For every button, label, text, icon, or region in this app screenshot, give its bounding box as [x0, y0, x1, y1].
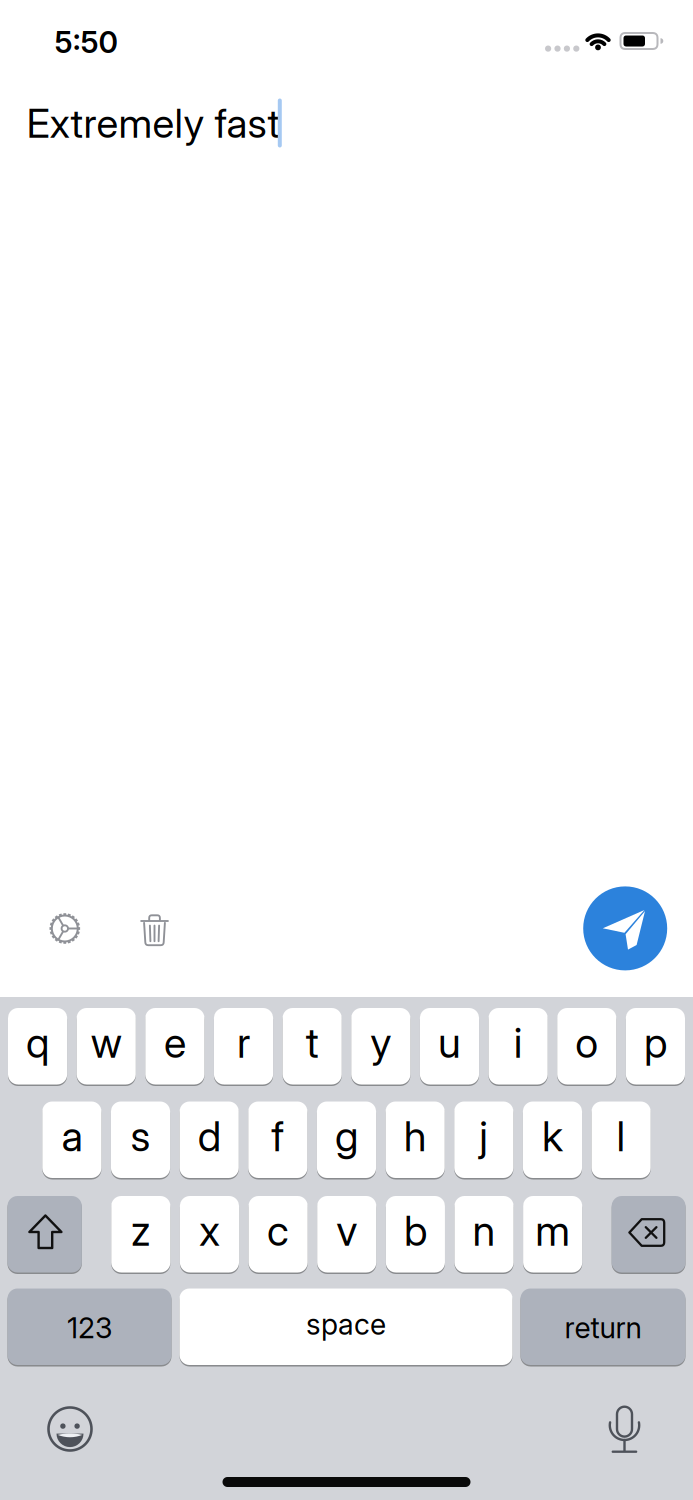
button[interactable] [44, 1403, 96, 1455]
staticText: p [644, 1018, 667, 1068]
staticText: i [514, 1018, 523, 1068]
staticText: h [404, 1111, 427, 1161]
button[interactable]: e [145, 1008, 204, 1084]
button[interactable]: i [488, 1008, 548, 1084]
button[interactable]: v [317, 1196, 376, 1272]
staticText: l [617, 1111, 626, 1161]
button[interactable] [130, 906, 178, 954]
staticText: e [164, 1018, 186, 1068]
button[interactable] [41, 904, 89, 952]
button[interactable]: k [523, 1101, 582, 1178]
button[interactable]: r [214, 1008, 273, 1084]
staticText: t [306, 1018, 319, 1068]
button[interactable]: z [111, 1196, 170, 1272]
staticText: f [271, 1111, 284, 1161]
staticText: 5:50 [54, 24, 117, 60]
staticText: y [370, 1018, 391, 1068]
button[interactable]: y [351, 1008, 410, 1084]
button[interactable]: o [557, 1008, 616, 1084]
staticText: s [130, 1111, 150, 1161]
button[interactable]: l [591, 1101, 651, 1178]
button[interactable]: u [420, 1008, 479, 1084]
button[interactable]: return [520, 1288, 685, 1365]
button[interactable]: j [454, 1101, 513, 1178]
button[interactable]: f [248, 1101, 307, 1178]
staticText: d [198, 1111, 221, 1161]
staticText: k [542, 1111, 563, 1161]
button[interactable]: c [248, 1196, 308, 1272]
staticText: n [472, 1206, 495, 1256]
staticText: w [91, 1018, 122, 1068]
button[interactable] [612, 1196, 685, 1272]
button[interactable]: 123 [7, 1288, 171, 1365]
staticText: o [575, 1018, 598, 1068]
staticText: b [404, 1206, 427, 1256]
button[interactable]: m [523, 1196, 582, 1272]
staticText: m [535, 1206, 570, 1256]
button[interactable] [583, 886, 667, 970]
button[interactable]: b [386, 1196, 445, 1272]
button[interactable]: n [454, 1196, 514, 1272]
staticText: r [237, 1018, 250, 1068]
button[interactable]: a [42, 1101, 101, 1178]
staticText: g [335, 1111, 358, 1161]
staticText: Extremely fast [26, 99, 280, 147]
staticText: return [564, 1310, 641, 1345]
staticText: j [479, 1111, 488, 1161]
button[interactable] [7, 1196, 82, 1272]
staticText: a [61, 1111, 82, 1161]
staticText: q [26, 1018, 49, 1068]
button[interactable]: t [283, 1008, 342, 1084]
button[interactable] [598, 1403, 650, 1455]
staticText: v [336, 1206, 357, 1256]
button[interactable]: g [317, 1101, 376, 1178]
button[interactable]: h [386, 1101, 445, 1178]
staticText: x [199, 1206, 220, 1256]
staticText: 123 [67, 1310, 112, 1345]
button[interactable]: x [180, 1196, 239, 1272]
staticText: z [131, 1206, 151, 1256]
staticText: u [438, 1018, 461, 1068]
button[interactable]: d [180, 1101, 239, 1178]
staticText: space [306, 1307, 386, 1342]
button[interactable]: space [179, 1288, 512, 1365]
staticText: c [267, 1206, 289, 1256]
button[interactable]: s [111, 1101, 170, 1178]
button[interactable]: p [626, 1008, 685, 1084]
button[interactable]: q [8, 1008, 67, 1084]
button[interactable]: w [77, 1008, 136, 1084]
